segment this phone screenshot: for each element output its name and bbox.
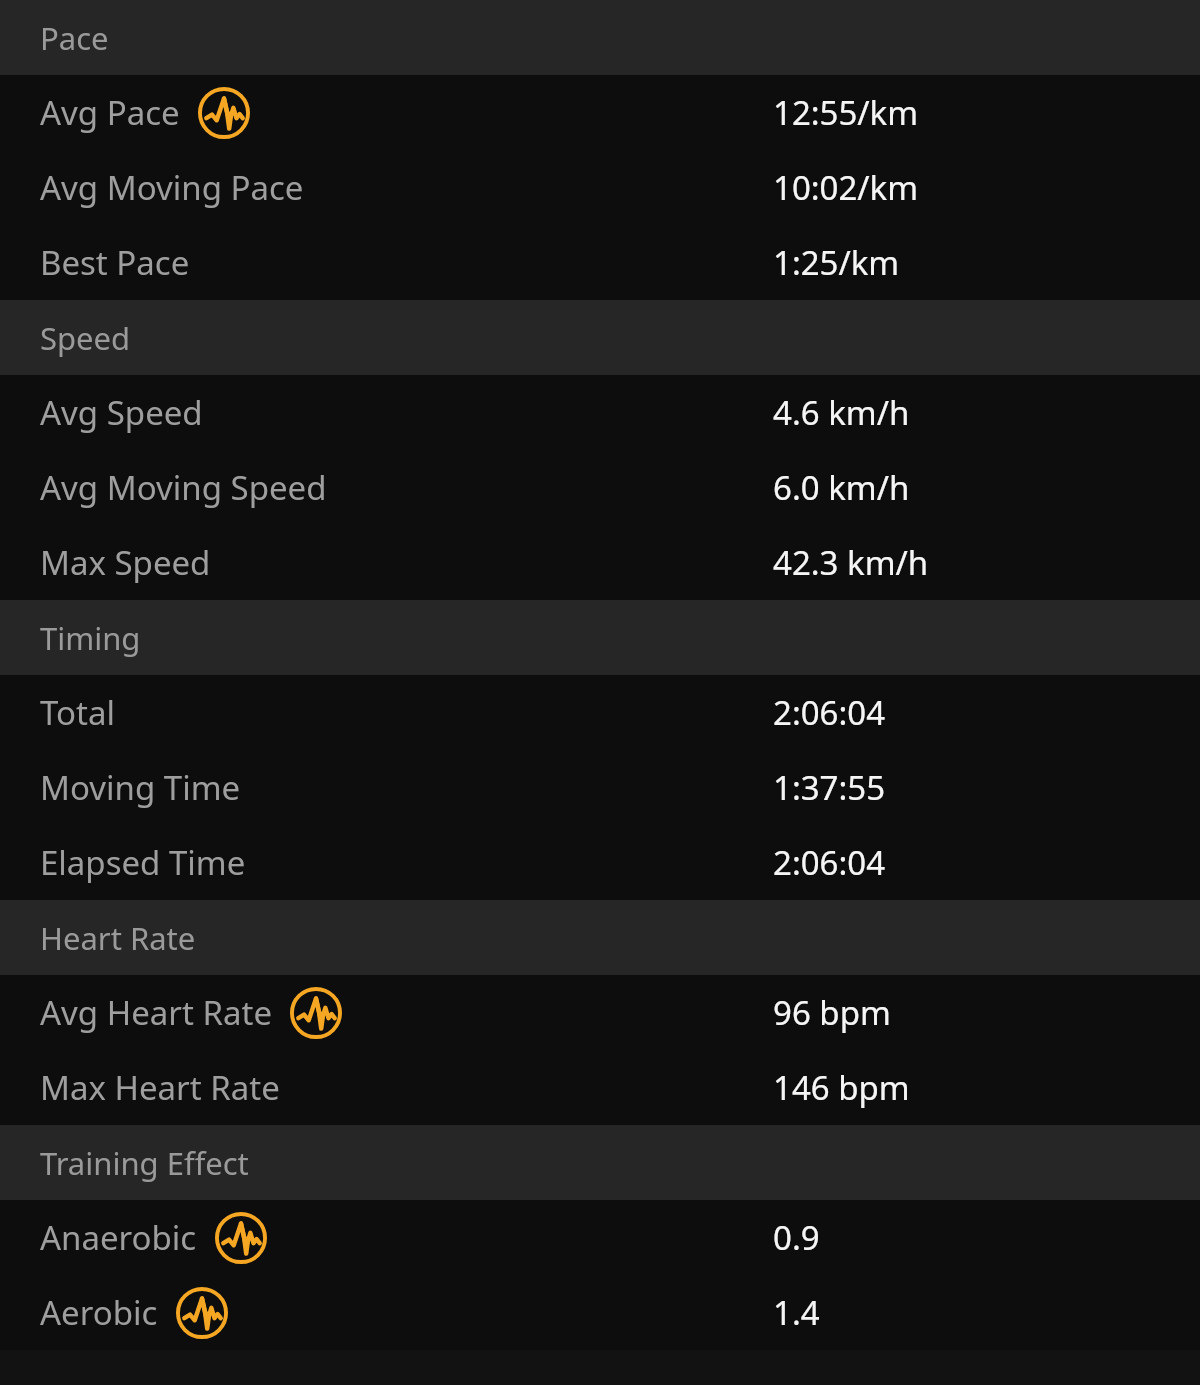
button[interactable]: Total xyxy=(0,675,1200,750)
staticText: 2:06:04 xyxy=(773,840,886,885)
button[interactable]: Avg Heart Rate xyxy=(0,975,1200,1050)
staticText: 42.3 km/h xyxy=(773,540,929,585)
button[interactable]: Avg Pace xyxy=(0,75,1200,150)
staticText: 96 bpm xyxy=(773,990,891,1035)
staticText: 1:37:55 xyxy=(773,765,886,810)
staticText: Avg Pace xyxy=(40,90,180,135)
button[interactable]: Aerobic xyxy=(0,1275,1200,1350)
button[interactable]: Best Pace xyxy=(0,225,1200,300)
staticText: Max Heart Rate xyxy=(40,1065,280,1110)
staticText: 6.0 km/h xyxy=(773,465,910,510)
staticText: Speed xyxy=(40,317,131,359)
staticText: 1.4 xyxy=(773,1290,820,1335)
staticText: Pace xyxy=(40,17,109,59)
button[interactable]: Avg Moving Pace xyxy=(0,150,1200,225)
staticText: Aerobic xyxy=(40,1290,158,1335)
staticText: 2:06:04 xyxy=(773,690,886,735)
staticText: Avg Moving Pace xyxy=(40,165,304,210)
staticText: Avg Heart Rate xyxy=(40,990,272,1035)
staticText: Heart Rate xyxy=(40,917,196,959)
button[interactable]: Anaerobic xyxy=(0,1200,1200,1275)
other: Device source xyxy=(290,987,342,1039)
staticText: Avg Moving Speed xyxy=(40,465,327,510)
staticText: 4.6 km/h xyxy=(773,390,910,435)
staticText: Total xyxy=(40,690,115,735)
staticText: Timing xyxy=(40,617,141,659)
button[interactable]: Elapsed Time xyxy=(0,825,1200,900)
button[interactable]: Moving Time xyxy=(0,750,1200,825)
button[interactable]: Avg Speed xyxy=(0,375,1200,450)
button[interactable]: Max Heart Rate xyxy=(0,1050,1200,1125)
staticText: Training Effect xyxy=(40,1142,249,1184)
other: Device source xyxy=(215,1212,267,1264)
staticText: 1:25/km xyxy=(773,240,900,285)
staticText: Elapsed Time xyxy=(40,840,246,885)
staticText: 0.9 xyxy=(773,1215,820,1260)
staticText: Anaerobic xyxy=(40,1215,197,1260)
staticText: Max Speed xyxy=(40,540,211,585)
other: Device source xyxy=(176,1287,228,1339)
staticText: Avg Speed xyxy=(40,390,203,435)
staticText: 146 bpm xyxy=(773,1065,910,1110)
staticText: Best Pace xyxy=(40,240,190,285)
button[interactable]: Max Speed xyxy=(0,525,1200,600)
staticText: 12:55/km xyxy=(773,90,919,135)
staticText: Moving Time xyxy=(40,765,241,810)
other: Device source xyxy=(198,87,250,139)
staticText: 10:02/km xyxy=(773,165,919,210)
button[interactable]: Avg Moving Speed xyxy=(0,450,1200,525)
